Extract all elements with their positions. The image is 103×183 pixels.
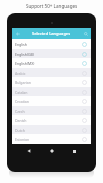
staticText: Selected Languages: [32, 31, 71, 36]
staticText: Czech: [15, 109, 25, 114]
button[interactable]: Search: [82, 30, 90, 38]
button[interactable]: English(MX): [12, 58, 91, 68]
staticText: Arabic: [15, 71, 26, 76]
button[interactable]: Catalan: [12, 87, 91, 97]
staticText: Support 50+ Languages: [26, 3, 78, 9]
button[interactable]: English: [12, 39, 91, 49]
staticText: English: [15, 42, 27, 47]
button[interactable]: Navigate back: [14, 30, 22, 38]
staticText: Catalan: [15, 90, 28, 95]
staticText: Danish: [15, 118, 27, 123]
button[interactable]: Estonian: [12, 134, 91, 144]
staticText: Estonian: [15, 137, 30, 142]
button[interactable]: Recent apps: [68, 145, 80, 157]
button[interactable]: Danish: [12, 115, 91, 125]
button[interactable]: Dutch: [12, 125, 91, 135]
staticText: English(GB): [15, 52, 34, 57]
button[interactable]: Croatian: [12, 96, 91, 106]
button[interactable]: Home: [46, 145, 58, 157]
button[interactable]: English(GB): [12, 49, 91, 59]
staticText: Bulgarian: [15, 80, 31, 85]
button[interactable]: Arabic: [12, 68, 91, 78]
staticText: Croatian: [15, 99, 29, 104]
button[interactable]: Back: [23, 145, 35, 157]
button[interactable]: Bulgarian: [12, 77, 91, 87]
button[interactable]: Czech: [12, 106, 91, 116]
staticText: Dutch: [15, 128, 25, 133]
staticText: English(MX): [15, 61, 35, 66]
